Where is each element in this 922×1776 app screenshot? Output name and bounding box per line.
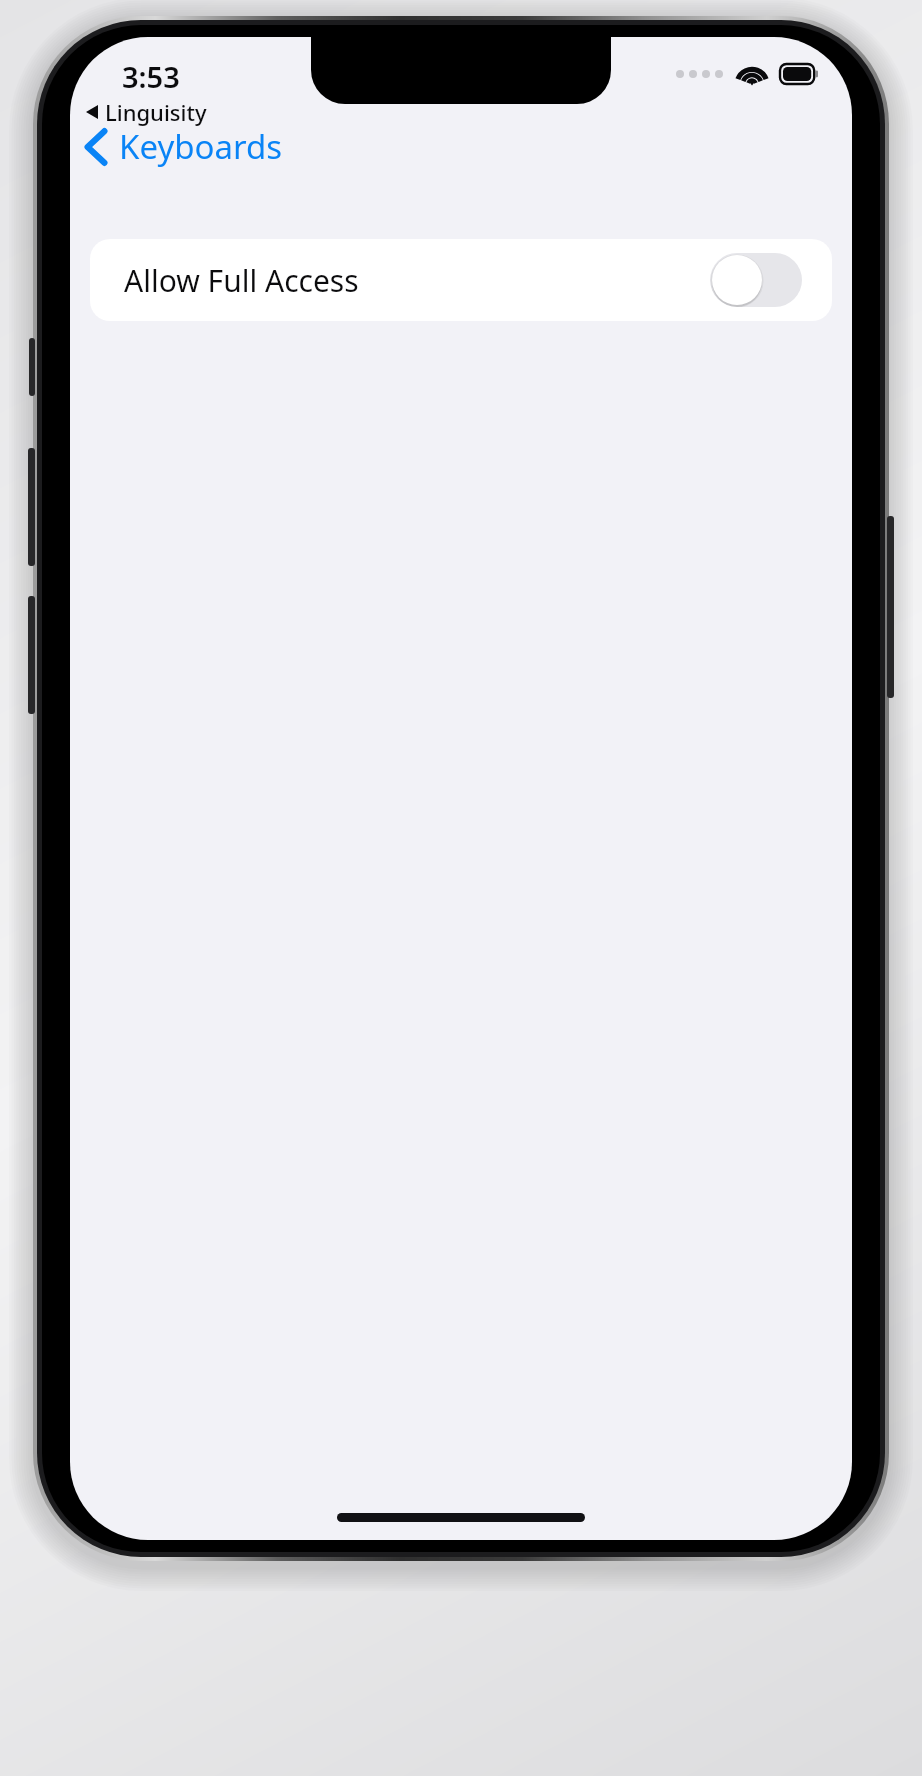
button[interactable]: Linguisity (84, 95, 209, 129)
staticText: Allow Full Access (124, 260, 359, 301)
button[interactable]: Back to Keyboards (78, 118, 291, 175)
button[interactable]: Allow Full Access toggle (710, 253, 802, 307)
staticText: Keyboards (119, 124, 283, 169)
button[interactable]: Allow Full Access (90, 239, 832, 321)
staticText: Linguisity (105, 97, 207, 127)
staticText: 3:53 (122, 57, 180, 96)
